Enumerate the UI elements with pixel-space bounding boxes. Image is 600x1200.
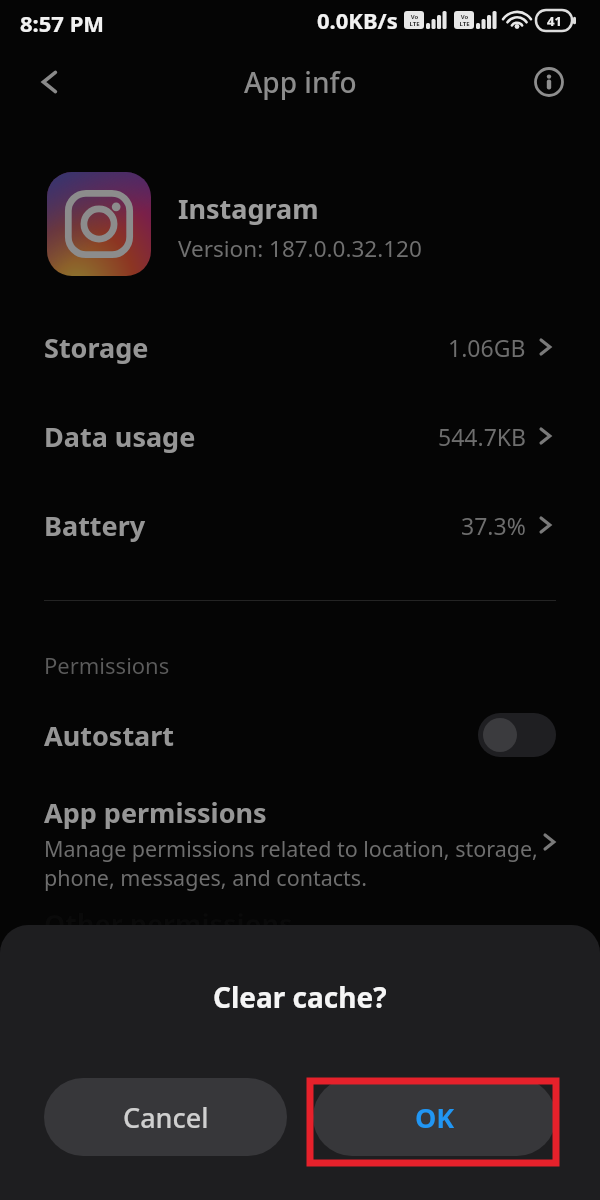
staticText: 37.3% <box>461 510 526 541</box>
staticText: App info <box>244 63 357 101</box>
staticText: App permissions <box>44 794 267 831</box>
button[interactable]: App permissions <box>0 782 600 902</box>
staticText: Cancel <box>123 1099 209 1136</box>
button[interactable]: Battery <box>0 481 600 569</box>
staticText: Manage permissions related to location, … <box>44 834 538 892</box>
staticText: Autostart <box>44 717 175 754</box>
staticText: 41 <box>547 12 562 30</box>
button[interactable]: OK <box>313 1078 556 1156</box>
staticText: 1.06GB <box>448 332 526 363</box>
button[interactable] <box>478 713 556 757</box>
staticText: 0.0KB/s <box>317 5 398 35</box>
staticText: Battery <box>44 507 146 544</box>
button[interactable]: Data usage <box>0 392 600 480</box>
button[interactable]: Autostart <box>0 695 600 775</box>
staticText: Version: 187.0.0.32.120 <box>178 233 422 264</box>
staticText: Data usage <box>44 418 196 455</box>
button[interactable] <box>532 65 566 99</box>
staticText: Storage <box>44 329 149 366</box>
staticText: 544.7KB <box>438 421 526 452</box>
staticText: Permissions <box>44 650 170 680</box>
button[interactable]: Storage <box>0 303 600 391</box>
staticText: Vo LTE <box>409 13 420 28</box>
staticText: Instagram <box>178 190 319 227</box>
staticText: Other permissions <box>44 905 293 942</box>
staticText: OK <box>415 1099 455 1136</box>
staticText: Clear cache? <box>213 978 387 1016</box>
staticText: Vo LTE <box>459 13 470 28</box>
button[interactable]: Cancel <box>44 1078 287 1156</box>
staticText: 8:57 PM <box>20 8 105 38</box>
button[interactable] <box>30 62 70 102</box>
button[interactable] <box>47 172 151 276</box>
